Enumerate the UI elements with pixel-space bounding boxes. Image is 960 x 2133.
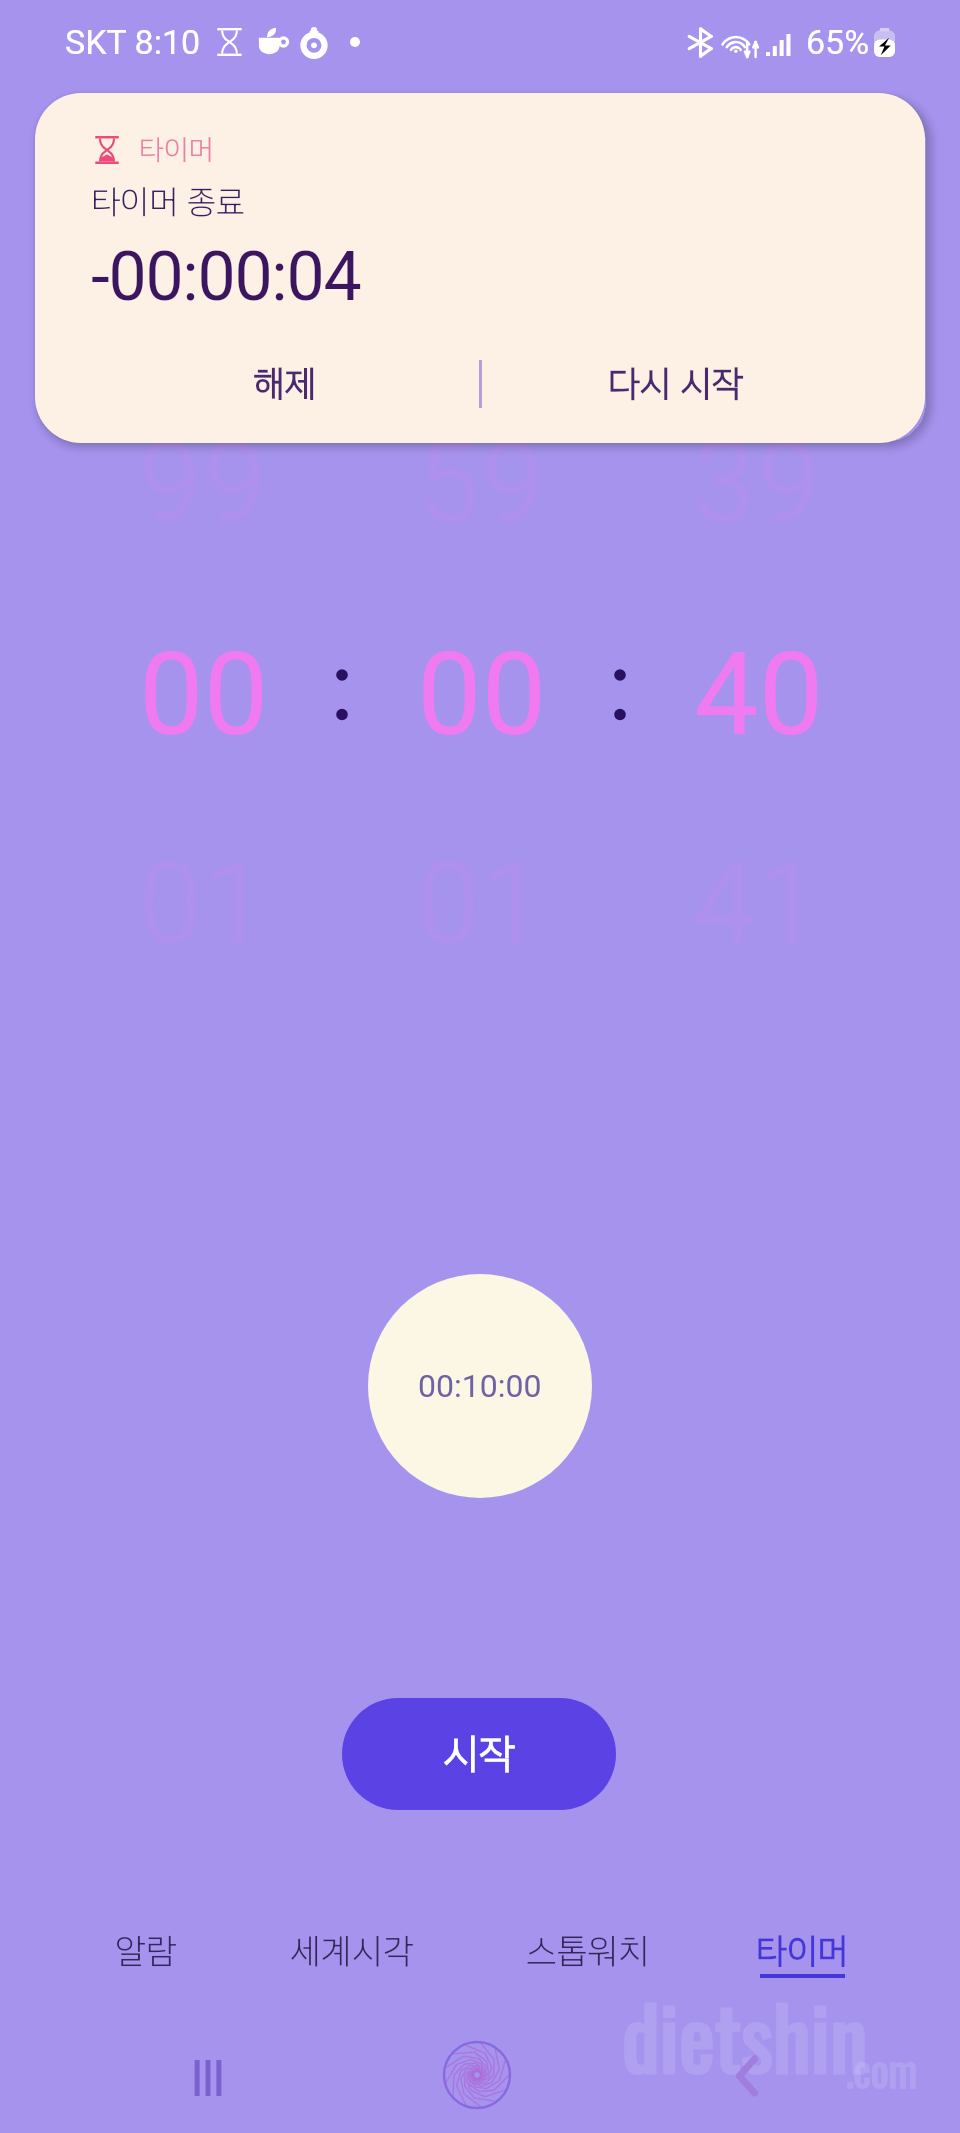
button[interactable]: 다시 시작 (526, 349, 826, 419)
staticText: 00 (139, 627, 269, 762)
button[interactable]: 40 (619, 594, 899, 794)
staticText: dietshin (622, 1972, 868, 2098)
staticText: 타이머 (756, 1930, 849, 1973)
button[interactable]: 세계시각 (247, 1900, 457, 2000)
button[interactable]: 39 (617, 382, 897, 582)
staticText: 00 (417, 627, 547, 762)
button[interactable]: 타이머 (35, 93, 925, 443)
staticText: 스톱워치 (526, 1930, 650, 1973)
button[interactable]: 59 (341, 382, 621, 582)
staticText: SKT 8:10 (65, 22, 201, 62)
staticText: 40 (694, 627, 824, 762)
staticText: 59 (416, 415, 546, 550)
staticText: 시작 (443, 1729, 515, 1779)
staticText: 세계시각 (290, 1930, 414, 1973)
staticText: 01 (416, 836, 546, 971)
button[interactable]: Back (689, 2041, 805, 2111)
button[interactable]: 00 (64, 594, 344, 794)
staticText: -00:00:04 (91, 237, 361, 317)
button[interactable]: 00 (342, 594, 622, 794)
staticText: 39 (692, 415, 822, 550)
staticText: 타이머 (139, 132, 214, 167)
staticText: .com (846, 2038, 918, 2100)
staticText: 다시 시작 (608, 362, 744, 406)
button[interactable]: 시작 (342, 1698, 616, 1810)
staticText: 해제 (253, 362, 317, 406)
staticText: 00:10:00 (418, 1367, 542, 1405)
button[interactable]: 00:10:00 (368, 1274, 592, 1498)
staticText: 65% (806, 22, 870, 62)
button[interactable]: Recent apps (150, 2043, 266, 2113)
button[interactable]: 해제 (135, 349, 435, 419)
staticText: 41 (692, 836, 822, 971)
button[interactable]: 스톱워치 (483, 1900, 693, 2000)
staticText: 99 (138, 415, 268, 550)
button[interactable]: Home (427, 2025, 527, 2125)
button[interactable]: 타이머 (697, 1900, 907, 2000)
staticText: 01 (138, 836, 268, 971)
staticText: 알람 (115, 1930, 177, 1973)
button[interactable]: 알람 (41, 1900, 251, 2000)
staticText: 타이머 종료 (91, 182, 245, 223)
button[interactable]: 99 (63, 382, 343, 582)
